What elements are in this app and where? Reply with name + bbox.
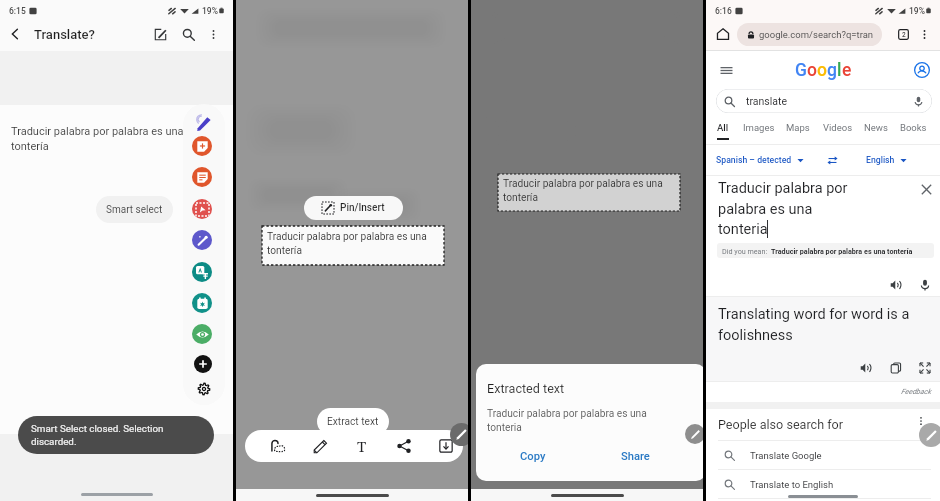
button[interactable]: Notes xyxy=(192,167,212,187)
staticText: Traducir palabra por palabra es una tont… xyxy=(487,408,647,434)
staticText: o xyxy=(807,60,817,81)
staticText: Videos xyxy=(823,122,853,133)
button[interactable]: Back xyxy=(0,19,30,49)
button[interactable]: Tabs: 2 xyxy=(892,23,914,45)
staticText: Extracted text xyxy=(487,381,565,396)
staticText: Images xyxy=(743,122,775,133)
button[interactable]: Pen xyxy=(685,424,705,444)
staticText: Traducir palabra por palabra es una tont… xyxy=(771,247,913,255)
staticText: Translate? xyxy=(34,27,95,42)
staticText: Pin/Insert xyxy=(340,202,385,214)
button[interactable]: Translate Google xyxy=(706,441,940,469)
button[interactable]: Pen xyxy=(450,423,473,446)
staticText: 6:15 xyxy=(9,6,26,16)
button[interactable]: Translate xyxy=(192,262,212,282)
button[interactable]: Magic xyxy=(192,230,212,250)
button[interactable]: All xyxy=(717,122,729,133)
button[interactable]: Smart select xyxy=(96,196,173,223)
button[interactable]: More options xyxy=(203,24,223,44)
button[interactable]: Extract text xyxy=(351,435,373,457)
staticText: Translating word for word is a foolishne… xyxy=(718,306,910,344)
button[interactable]: Listen xyxy=(857,359,875,377)
staticText: Share xyxy=(621,450,650,463)
button[interactable]: Spanish – detected xyxy=(716,155,804,165)
button[interactable]: Translate to English xyxy=(706,470,940,498)
staticText: Translate Google xyxy=(750,450,822,461)
button[interactable]: Draw xyxy=(309,435,331,457)
button[interactable]: google.com/search?q=tran xyxy=(737,23,882,46)
button[interactable]: More options xyxy=(913,413,929,429)
staticText: Copy xyxy=(520,450,546,463)
staticText: Traducir palabra por palabra es una tont… xyxy=(11,125,216,153)
staticText: Feedback xyxy=(901,387,931,395)
staticText: Smart Select closed. Selection discarded… xyxy=(31,423,164,447)
button[interactable]: Books xyxy=(900,122,927,133)
staticText: Maps xyxy=(786,122,810,133)
staticText: g xyxy=(827,60,837,81)
button[interactable]: Smart select xyxy=(192,199,212,219)
button[interactable]: Smart select xyxy=(267,435,289,457)
staticText: 2 xyxy=(902,31,906,39)
staticText: google.com/search?q=tran xyxy=(759,29,874,40)
button[interactable]: Pen xyxy=(190,109,214,133)
staticText: All xyxy=(717,122,729,133)
button[interactable]: Save xyxy=(435,435,457,457)
staticText: 19% xyxy=(202,6,218,16)
button[interactable]: Live message xyxy=(192,324,212,344)
button[interactable]: Settings xyxy=(195,380,212,397)
staticText: News xyxy=(864,122,888,133)
button[interactable]: Menu xyxy=(714,58,738,82)
button[interactable]: translate xyxy=(716,89,932,113)
staticText: Smart select xyxy=(106,204,163,216)
button[interactable]: Copy xyxy=(517,445,548,467)
button[interactable]: Images xyxy=(743,122,775,133)
staticText: Traducir palabra por palabra es una tont… xyxy=(718,180,848,238)
button[interactable]: Add xyxy=(194,355,212,373)
staticText: 6:16 xyxy=(715,6,732,16)
button[interactable]: Swap languages xyxy=(824,152,840,168)
staticText: People also search for xyxy=(718,417,844,432)
button[interactable]: Clear xyxy=(920,183,933,196)
staticText: o xyxy=(817,60,827,81)
button[interactable]: Did you mean: xyxy=(717,243,934,258)
button[interactable]: English xyxy=(866,155,907,165)
staticText: Traducir palabra por palabra es una tont… xyxy=(267,231,427,257)
staticText: e xyxy=(842,60,852,81)
staticText: G xyxy=(795,60,807,81)
button[interactable]: Account xyxy=(909,57,935,83)
staticText: English xyxy=(866,155,895,165)
button[interactable]: Search xyxy=(175,21,201,47)
button[interactable]: Videos xyxy=(823,122,853,133)
staticText: Traducir palabra por palabra es una tont… xyxy=(503,178,663,204)
button[interactable]: Listen xyxy=(887,276,904,293)
button[interactable]: Edit xyxy=(147,21,173,47)
button[interactable]: Share xyxy=(393,435,415,457)
staticText: Spanish – detected xyxy=(716,155,792,165)
button[interactable]: More options xyxy=(914,24,934,44)
button[interactable]: Share xyxy=(618,445,653,467)
button[interactable]: Pen xyxy=(919,423,940,447)
button[interactable]: Copy xyxy=(887,359,905,377)
staticText: translate xyxy=(746,95,787,107)
staticText: Translate to English xyxy=(750,479,834,490)
button[interactable]: Home xyxy=(712,23,734,45)
staticText: 19% xyxy=(909,6,925,16)
button[interactable]: Maps xyxy=(786,122,810,133)
staticText: Extract text xyxy=(327,416,379,428)
button[interactable]: Pin/Insert xyxy=(304,196,403,220)
button[interactable]: Expand xyxy=(916,359,934,377)
button[interactable]: Feedback xyxy=(901,387,931,395)
staticText: Books xyxy=(900,122,927,133)
staticText: l xyxy=(837,60,842,81)
staticText: Did you mean: xyxy=(722,247,768,255)
button[interactable]: Calendar xyxy=(192,293,212,313)
button[interactable]: News xyxy=(864,122,888,133)
button[interactable]: Voice input xyxy=(916,276,933,293)
button[interactable]: Create note xyxy=(192,136,212,156)
staticText: T xyxy=(357,436,367,456)
